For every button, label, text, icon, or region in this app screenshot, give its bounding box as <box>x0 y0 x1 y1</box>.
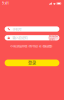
button[interactable]: 获取验证码 <box>48 36 59 40</box>
staticText: 获取验证码 <box>49 33 58 42</box>
staticText: 输入验证码 <box>12 35 27 40</box>
staticText: 我已阅读并同意《用户协议》和《隐私政策》 <box>13 44 53 48</box>
staticText: 登录 <box>28 60 36 66</box>
staticText: 手机号 <box>12 27 21 31</box>
staticText: 9:41 <box>2 2 9 5</box>
button[interactable]: 我已阅读并同意《用户协议》和《隐私政策》 <box>0 45 64 48</box>
button[interactable]: 登录 <box>0 59 64 66</box>
